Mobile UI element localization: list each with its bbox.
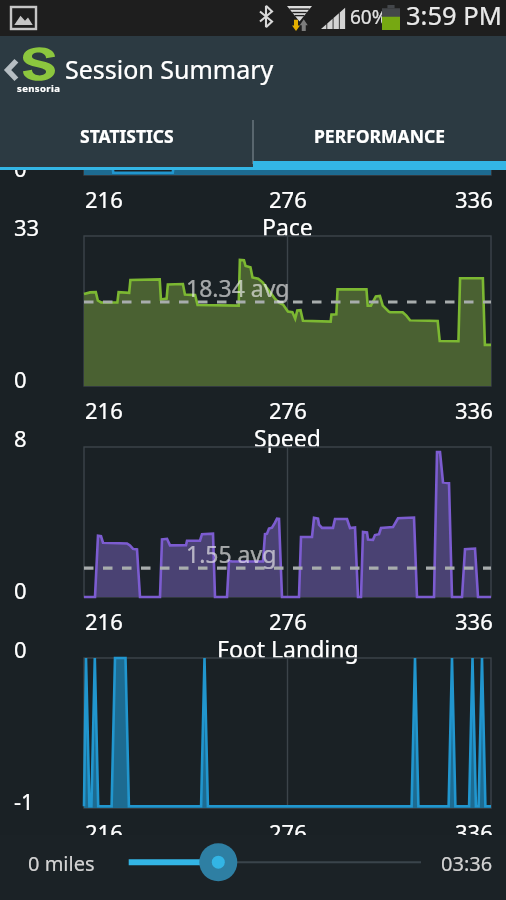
staticText: 3:59 PM (406, 0, 502, 33)
staticText: 276 (269, 184, 307, 214)
staticText: 33 (14, 212, 40, 242)
staticText: Foot Landing (217, 633, 359, 664)
staticText: 216 (85, 184, 123, 214)
button[interactable]: STATISTICS (0, 106, 253, 170)
staticText: 03:36 (441, 850, 493, 877)
staticText: Session Summary (65, 52, 274, 86)
staticText: 0 (14, 634, 27, 664)
button[interactable]: Session position (110, 837, 440, 899)
staticText: 0 (14, 575, 27, 605)
staticText: 276 (269, 817, 307, 847)
staticText: 216 (85, 606, 123, 636)
staticText: Pace (262, 211, 313, 242)
staticText: -1 (14, 786, 34, 816)
staticText: 214 (14, 1, 52, 31)
staticText: 216 (85, 817, 123, 847)
staticText: 60% (350, 4, 388, 30)
staticText: STATISTICS (80, 124, 174, 148)
staticText: 18.34 avg (186, 272, 290, 303)
staticText: Speed (254, 422, 321, 453)
staticText: Cadence (241, 0, 334, 31)
button[interactable]: PERFORMANCE (253, 106, 506, 170)
staticText: 0 miles (28, 850, 95, 877)
staticText: 0 (14, 153, 27, 183)
staticText: 0 (14, 364, 27, 394)
staticText: 1.55 avg (186, 538, 277, 569)
staticText: 8 (14, 423, 27, 453)
staticText: 336 (455, 395, 493, 425)
staticText: PERFORMANCE (314, 124, 445, 148)
staticText: 216 (85, 395, 123, 425)
staticText: sensoria (17, 82, 61, 95)
staticText: 336 (455, 184, 493, 214)
staticText: 336 (455, 817, 493, 847)
button[interactable]: Navigate up (0, 36, 64, 106)
staticText: 276 (269, 395, 307, 425)
staticText: 276 (269, 606, 307, 636)
staticText: 336 (455, 606, 493, 636)
